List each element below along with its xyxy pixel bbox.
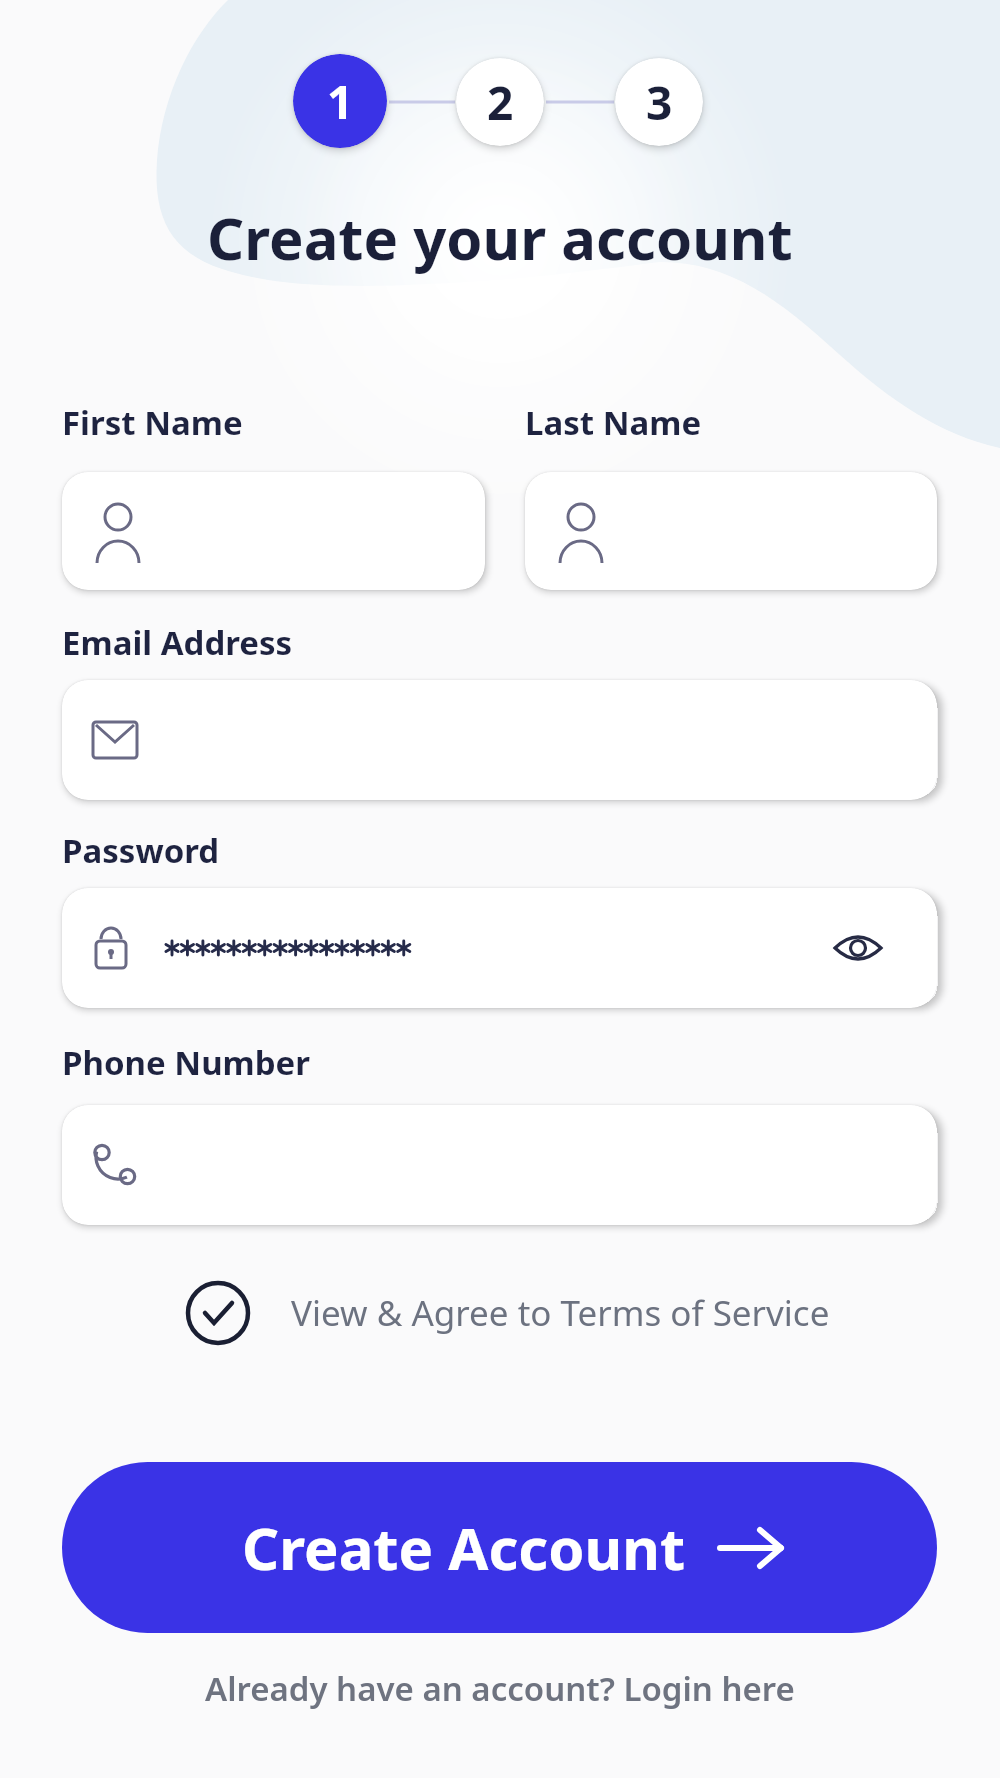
button[interactable] <box>62 1105 937 1225</box>
staticText: Phone Number <box>62 1040 311 1085</box>
button[interactable]: Already have an account? Login here <box>205 1666 795 1711</box>
staticText: View & Agree to Terms of Service <box>291 1289 830 1337</box>
button[interactable] <box>62 680 937 800</box>
button[interactable] <box>525 472 937 590</box>
button[interactable]: View & Agree to Terms of Service <box>185 1280 790 1346</box>
staticText: 3 <box>646 71 673 134</box>
staticText: Create your account <box>207 198 793 277</box>
staticText: Create Account <box>242 1508 686 1587</box>
staticText: Already have an account? Login here <box>205 1666 795 1711</box>
staticText: Email Address <box>62 620 293 665</box>
staticText: Password <box>62 828 220 873</box>
staticText: Last Name <box>525 400 702 445</box>
staticText: First Name <box>62 400 243 445</box>
staticText: 1 <box>327 70 354 133</box>
staticText: 2 <box>487 71 514 134</box>
button[interactable] <box>62 472 485 590</box>
button[interactable] <box>62 888 937 1008</box>
button[interactable]: Create Account <box>62 1462 937 1633</box>
